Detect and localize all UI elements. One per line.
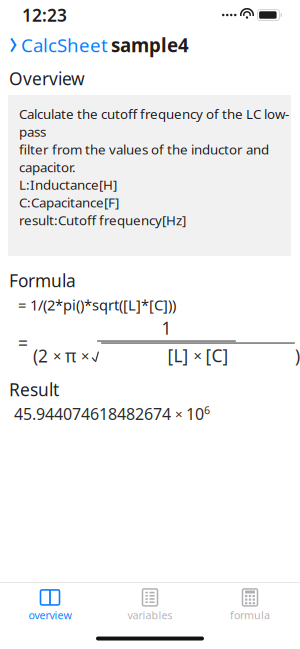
staticText: [C] [205, 344, 228, 367]
staticText: = 1/(2*pi()*sqrt([L]*[C])) [18, 295, 176, 314]
staticText: Overview [9, 67, 85, 90]
staticText: = [18, 331, 28, 354]
staticText: × [81, 346, 93, 366]
staticText: formula [230, 608, 270, 622]
staticText: filter from the values of the inductor a… [19, 140, 269, 176]
staticText: sample4 [111, 33, 189, 57]
staticText: π [65, 344, 81, 367]
staticText: 10 [186, 403, 204, 424]
staticText: × [53, 346, 65, 366]
staticText: × [175, 405, 186, 423]
staticText: L:Inductance[H] [19, 176, 117, 193]
staticText: overview [28, 608, 71, 622]
staticText: × [193, 346, 205, 365]
staticText: result:Cutoff frequency[Hz] [19, 211, 186, 229]
staticText: Formula [9, 269, 76, 292]
button[interactable]: overview [0, 583, 100, 628]
staticText: (2 [33, 344, 53, 367]
staticText: [L] [167, 344, 193, 367]
button[interactable]: CalcSheet [0, 27, 108, 63]
staticText: ) [295, 344, 300, 367]
staticText: Result [9, 378, 59, 401]
button[interactable]: variables [100, 583, 200, 628]
staticText: C:Capacitance[F] [19, 193, 119, 211]
staticText: Calculate the cutoff frequency of the LC… [19, 105, 289, 140]
staticText: CalcSheet [21, 33, 108, 57]
staticText: 12:23 [22, 3, 67, 26]
staticText: 45.944074618482674 [14, 403, 175, 424]
staticText: variables [127, 608, 172, 622]
button[interactable]: formula [200, 583, 300, 628]
staticText: 1 [161, 316, 171, 339]
staticText: 6 [204, 403, 210, 417]
